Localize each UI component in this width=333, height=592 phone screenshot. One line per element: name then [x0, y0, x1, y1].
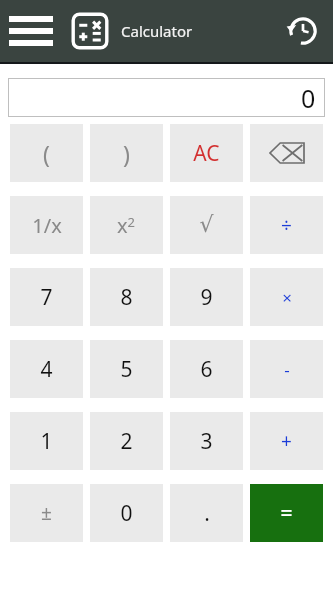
- staticText: AC: [193, 139, 220, 168]
- button[interactable]: 5: [90, 340, 163, 398]
- button[interactable]: ±: [10, 484, 83, 542]
- button[interactable]: 7: [10, 268, 83, 326]
- staticText: 8: [120, 283, 133, 312]
- staticText: 5: [120, 355, 133, 384]
- staticText: =: [280, 499, 293, 528]
- button[interactable]: ÷: [250, 196, 323, 254]
- button[interactable]: -: [250, 340, 323, 398]
- button[interactable]: ×: [250, 268, 323, 326]
- staticText: +: [281, 428, 292, 454]
- staticText: 4: [40, 355, 53, 384]
- staticText: 3: [200, 427, 213, 456]
- staticText: 1: [40, 427, 53, 456]
- button[interactable]: ): [90, 124, 163, 182]
- button[interactable]: 6: [170, 340, 243, 398]
- staticText: 0: [120, 499, 133, 528]
- staticText: ): [123, 138, 130, 169]
- staticText: x2: [117, 212, 136, 239]
- button[interactable]: Menu: [8, 8, 54, 54]
- staticText: ÷: [281, 212, 292, 238]
- staticText: 9: [200, 283, 213, 312]
- button[interactable]: .: [170, 484, 243, 542]
- button[interactable]: 9: [170, 268, 243, 326]
- button[interactable]: x2: [90, 196, 163, 254]
- button[interactable]: 1: [10, 412, 83, 470]
- button[interactable]: Equals: [250, 484, 323, 542]
- button[interactable]: (: [10, 124, 83, 182]
- staticText: ×: [282, 286, 292, 309]
- button[interactable]: History: [281, 9, 325, 53]
- staticText: (: [43, 138, 50, 169]
- staticText: 2: [120, 427, 133, 456]
- button[interactable]: AC: [170, 124, 243, 182]
- staticText: -: [284, 358, 290, 381]
- staticText: 1/x: [32, 212, 62, 239]
- button[interactable]: √: [170, 196, 243, 254]
- staticText: 0: [301, 81, 316, 115]
- button[interactable]: 8: [90, 268, 163, 326]
- staticText: 6: [200, 355, 213, 384]
- button[interactable]: 2: [90, 412, 163, 470]
- button[interactable]: 3: [170, 412, 243, 470]
- staticText: Calculator: [121, 21, 193, 41]
- staticText: √: [199, 212, 214, 238]
- staticText: .: [204, 499, 210, 528]
- button[interactable]: Backspace: [250, 124, 323, 182]
- button[interactable]: 0: [90, 484, 163, 542]
- staticText: 7: [40, 283, 53, 312]
- button[interactable]: 4: [10, 340, 83, 398]
- staticText: ±: [41, 500, 52, 526]
- button[interactable]: 1/x: [10, 196, 83, 254]
- button[interactable]: Calculator: [68, 9, 112, 53]
- button[interactable]: +: [250, 412, 323, 470]
